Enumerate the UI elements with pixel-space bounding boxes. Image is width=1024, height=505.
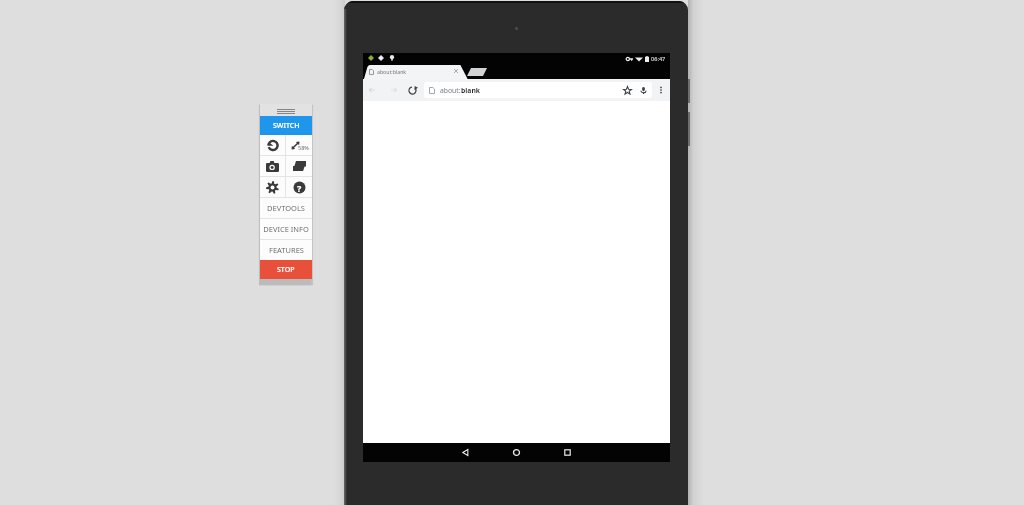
staticText: about:blank [377, 68, 407, 75]
staticText: about: [440, 86, 461, 95]
staticText: SWITCH [273, 121, 300, 131]
button[interactable]: Screenshot [260, 156, 285, 176]
button[interactable]: Close tab [454, 69, 458, 73]
button[interactable]: about:blank tab [364, 65, 489, 79]
staticText: 58% [298, 144, 309, 151]
button[interactable]: Help [286, 177, 312, 197]
button[interactable]: DEVICE INFO [260, 219, 312, 239]
button[interactable]: Recents [542, 443, 593, 462]
staticText: ? [297, 182, 302, 194]
button[interactable]: about: [424, 82, 652, 98]
button[interactable]: Rotate [260, 135, 285, 155]
button[interactable]: STOP [260, 260, 312, 279]
button[interactable]: Voice search [639, 86, 648, 95]
staticText: DEVICE INFO [263, 224, 309, 234]
button[interactable]: Forward [389, 85, 399, 95]
staticText: DEVTOOLS [267, 203, 305, 213]
staticText: blank [461, 86, 481, 95]
button[interactable]: Back [440, 443, 491, 462]
staticText: FEATURES [269, 245, 304, 255]
button[interactable]: Settings [260, 177, 285, 197]
button[interactable]: Home [491, 443, 542, 462]
button[interactable]: More options [656, 85, 666, 95]
staticText: 06:47 [651, 55, 666, 63]
button[interactable]: FEATURES [260, 240, 312, 260]
button[interactable]: Back [367, 85, 377, 95]
button[interactable]: Bookmark [623, 86, 632, 95]
button[interactable]: Zoom 58% [286, 135, 312, 155]
button[interactable]: SWITCH [260, 116, 312, 135]
button[interactable]: Reload [407, 85, 418, 96]
button[interactable]: DEVTOOLS [260, 198, 312, 218]
staticText: STOP [277, 265, 295, 275]
button[interactable]: Multi window [286, 156, 312, 176]
